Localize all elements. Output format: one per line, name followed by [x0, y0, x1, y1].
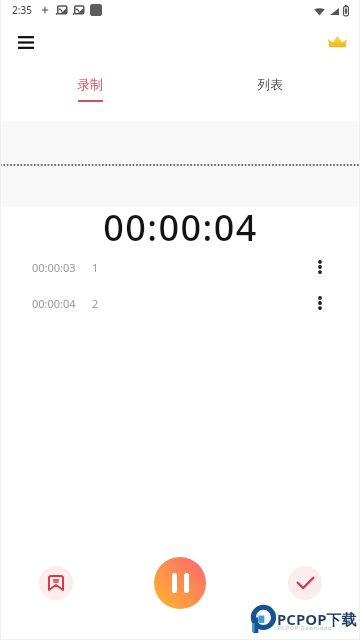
button[interactable]: Pause	[154, 557, 206, 609]
button[interactable]: Menu	[6, 20, 46, 64]
button[interactable]: Bookmark lap	[39, 566, 73, 600]
button[interactable]: More options	[302, 285, 338, 321]
staticText: 2:35	[12, 3, 32, 17]
button[interactable]: 列表	[180, 66, 360, 108]
staticText: PCPOP下载	[277, 609, 357, 629]
button[interactable]: Finish	[288, 566, 322, 600]
staticText: 00:00:04	[103, 203, 258, 247]
staticText: PCPOP Download	[278, 625, 332, 632]
staticText: 列表	[257, 76, 283, 92]
staticText: 00:00:03	[32, 260, 76, 275]
staticText: 录制	[77, 76, 103, 92]
button[interactable]: 录制	[0, 66, 180, 108]
staticText: 1	[92, 260, 99, 275]
button[interactable]: 00:00:03	[0, 249, 360, 285]
staticText: 00:00:04	[32, 296, 76, 311]
staticText: 2	[92, 296, 99, 311]
button[interactable]: 00:00:04	[0, 285, 360, 321]
button[interactable]: More options	[302, 249, 338, 285]
button[interactable]: Premium	[317, 19, 357, 63]
